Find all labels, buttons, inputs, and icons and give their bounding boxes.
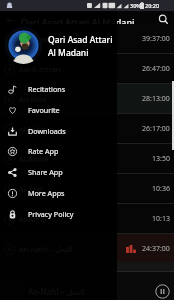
staticText: Qari Asad Attari (48, 34, 113, 46)
button[interactable]: Recitations (0, 79, 117, 99)
staticText: 26:17:00 (142, 124, 170, 134)
button[interactable]: Share App (0, 162, 117, 182)
staticText: An-Nisa (19, 94, 47, 104)
staticText: More Apps (28, 188, 65, 198)
staticText: Aal-E-Imran (19, 64, 61, 74)
button[interactable]: An-Nahl – النحل (0, 234, 174, 263)
staticText: An-Nahl – النحل (28, 286, 85, 297)
button[interactable]: Al-Anfal (0, 204, 174, 233)
button[interactable]: Pause (155, 284, 170, 299)
staticText: Qari Asad Attari Al Madani (21, 16, 135, 28)
staticText: 30% (130, 2, 141, 9)
staticText: Al Madani (48, 47, 89, 59)
button[interactable]: Al-Baqarah (0, 24, 174, 53)
staticText: 20:20 (145, 2, 160, 9)
staticText: Rate App (28, 146, 59, 156)
staticText: 28:13:00 (142, 94, 170, 104)
button[interactable]: Favourite (0, 100, 117, 120)
button[interactable]: Search (154, 13, 172, 26)
staticText: 26:47:00 (142, 64, 170, 74)
staticText: Downloads (28, 126, 66, 136)
button[interactable]: Back (2, 14, 18, 27)
button[interactable]: An-Nisa (0, 84, 174, 113)
staticText: Share App (28, 167, 63, 177)
button[interactable]: Privacy Policy (0, 204, 117, 224)
button[interactable]: Aal-E-Imran (0, 54, 174, 83)
staticText: Al-Maidah (19, 124, 55, 134)
button[interactable]: More Apps (0, 183, 117, 203)
button[interactable]: Rate App (0, 141, 117, 161)
button[interactable]: Downloads (0, 121, 117, 141)
staticText: Al-Anfal (19, 214, 47, 224)
staticText: 39:37:00 (142, 34, 170, 44)
staticText: 24:37:00 (142, 244, 170, 254)
button[interactable]: Al-Maidah (0, 114, 174, 143)
staticText: Al-Araf (19, 184, 43, 194)
button[interactable]: Al-Anam (0, 144, 174, 173)
staticText: Al-Anam (19, 154, 49, 164)
staticText: Favourite (28, 105, 60, 115)
staticText: Al-Baqarah (19, 34, 58, 44)
staticText: 10:13 (152, 214, 170, 224)
staticText: Recitations (28, 84, 66, 94)
staticText: An-Nahl – النحل (19, 244, 73, 254)
staticText: Privacy Policy (28, 209, 74, 219)
staticText: 13:50 (152, 154, 170, 164)
button[interactable]: Al-Araf (0, 174, 174, 203)
staticText: 10:36 (152, 184, 170, 194)
